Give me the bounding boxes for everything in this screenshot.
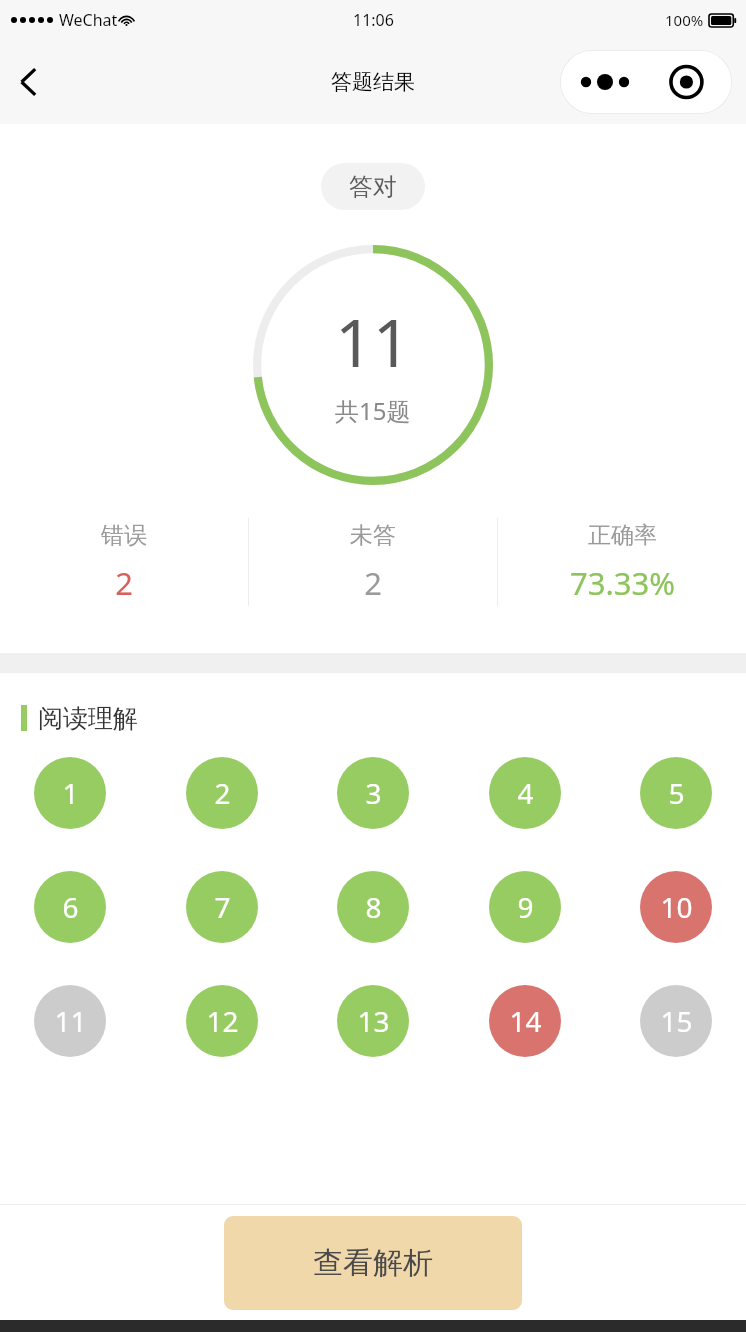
staticText: 10 [660, 888, 693, 926]
staticText: 答题结果 [331, 69, 415, 95]
button[interactable]: 8 [337, 871, 409, 943]
staticText: 8 [365, 888, 382, 926]
button[interactable]: 答对 [321, 163, 425, 210]
staticText: 未答 [350, 521, 396, 550]
button[interactable]: 2 [186, 757, 258, 829]
button[interactable]: 9 [489, 871, 561, 943]
button[interactable]: 4 [489, 757, 561, 829]
button[interactable]: 7 [186, 871, 258, 943]
staticText: 1 [62, 774, 79, 812]
staticText: 2 [214, 774, 231, 812]
staticText: 13 [357, 1002, 390, 1040]
staticText: 9 [517, 888, 534, 926]
staticText: 正确率 [588, 521, 657, 550]
button[interactable]: 3 [337, 757, 409, 829]
staticText: 15 [660, 1002, 693, 1040]
button[interactable]: 15 [640, 985, 712, 1057]
staticText: 12 [206, 1002, 239, 1040]
staticText: 查看解析 [313, 1244, 433, 1282]
staticText: 7 [214, 888, 231, 926]
staticText: 11 [54, 1002, 87, 1040]
staticText: 14 [509, 1002, 542, 1040]
button[interactable]: 未答 [249, 521, 497, 604]
staticText: 5 [668, 774, 685, 812]
button[interactable]: 12 [186, 985, 258, 1057]
button[interactable]: 正确率 [498, 521, 746, 604]
staticText: 错误 [101, 521, 147, 550]
staticText: WeChat [59, 9, 118, 31]
staticText: 11 [335, 296, 411, 386]
button[interactable]: 1 [34, 757, 106, 829]
button[interactable]: 5 [640, 757, 712, 829]
staticText: 100% [665, 10, 704, 30]
button[interactable]: Menu [560, 50, 732, 114]
staticText: 阅读理解 [38, 703, 138, 733]
staticText: 11:06 [353, 9, 394, 31]
button[interactable]: 6 [34, 871, 106, 943]
button[interactable]: 11 [34, 985, 106, 1057]
staticText: 2 [115, 562, 133, 604]
button[interactable]: Back [4, 58, 52, 106]
button[interactable]: 查看解析 [224, 1216, 522, 1310]
staticText: 4 [517, 774, 534, 812]
staticText: 答对 [349, 172, 397, 202]
button[interactable]: 错误 [0, 521, 248, 604]
button[interactable]: 10 [640, 871, 712, 943]
button[interactable]: 13 [337, 985, 409, 1057]
staticText: 共15题 [335, 394, 411, 427]
button[interactable]: 14 [489, 985, 561, 1057]
staticText: 2 [364, 562, 382, 604]
staticText: 73.33% [570, 562, 675, 604]
staticText: 6 [62, 888, 79, 926]
staticText: 3 [365, 774, 382, 812]
